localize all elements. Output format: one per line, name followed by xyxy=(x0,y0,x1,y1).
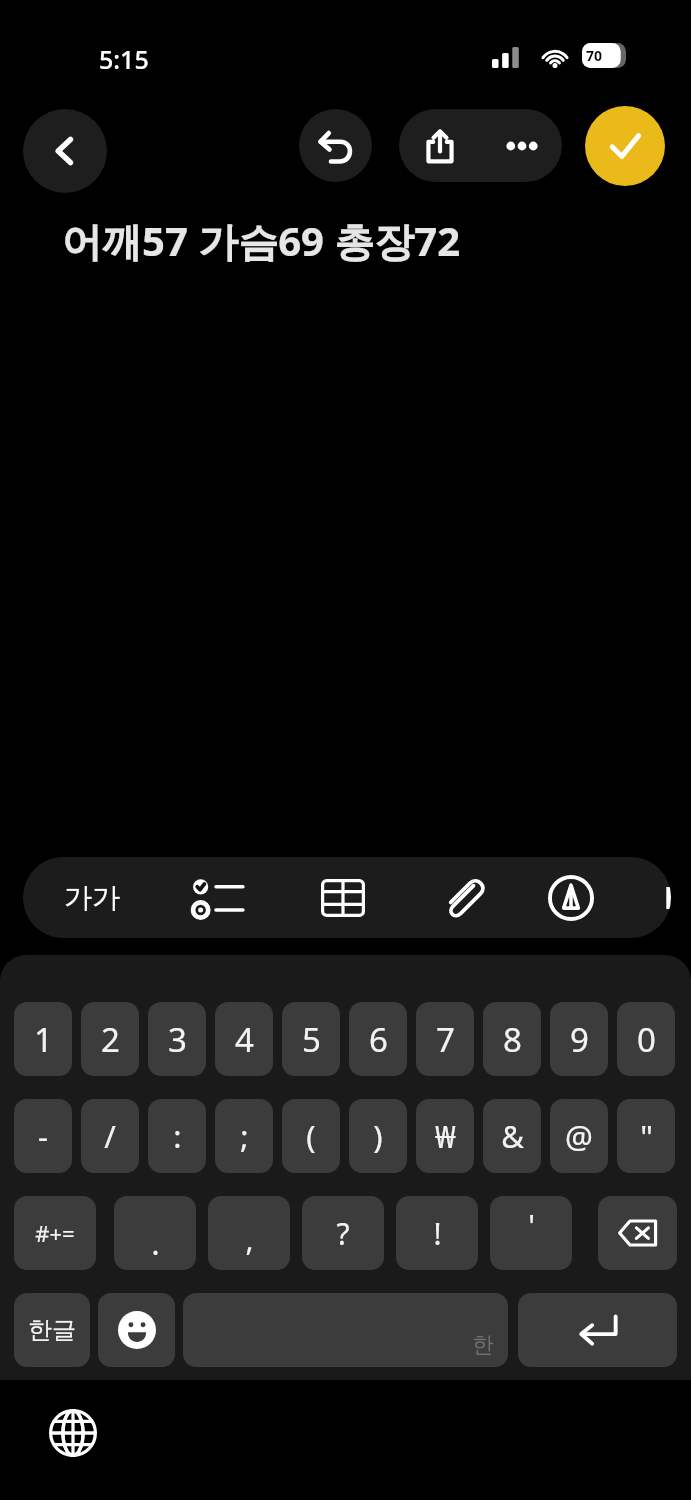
button[interactable]: - xyxy=(14,1099,72,1173)
button[interactable]: ₩ xyxy=(416,1099,474,1173)
button[interactable]: Space xyxy=(183,1293,508,1367)
staticText: 한글 xyxy=(28,1315,76,1345)
button[interactable]: 4 xyxy=(215,1002,273,1076)
button[interactable]: 1 xyxy=(14,1002,72,1076)
staticText: ; xyxy=(240,1115,249,1157)
staticText: ( xyxy=(306,1115,316,1157)
staticText: 2 xyxy=(101,1017,120,1062)
button[interactable]: More options xyxy=(481,109,562,182)
staticText: #+= xyxy=(35,1218,75,1248)
staticText: 70 xyxy=(586,46,603,65)
button[interactable]: 한글 xyxy=(14,1293,90,1367)
button[interactable]: Undo xyxy=(299,109,372,182)
staticText: - xyxy=(38,1115,48,1157)
button[interactable]: 6 xyxy=(349,1002,407,1076)
button[interactable]: Back xyxy=(23,109,107,193)
button[interactable]: 3 xyxy=(148,1002,206,1076)
staticText: 7 xyxy=(436,1017,455,1062)
staticText: 0 xyxy=(637,1017,656,1062)
button[interactable]: ! xyxy=(396,1196,478,1270)
button[interactable]: Done xyxy=(585,106,665,186)
button[interactable]: ' xyxy=(490,1196,572,1270)
button[interactable]: 9 xyxy=(550,1002,608,1076)
staticText: & xyxy=(501,1115,524,1157)
button[interactable]: : xyxy=(148,1099,206,1173)
button[interactable]: 0 xyxy=(617,1002,675,1076)
staticText: @ xyxy=(565,1115,593,1157)
button[interactable]: Draw xyxy=(518,857,623,938)
button[interactable]: Backspace xyxy=(598,1196,677,1270)
button[interactable]: Bold xyxy=(628,857,671,938)
button[interactable]: Change keyboard language xyxy=(38,1398,108,1468)
button[interactable]: 7 xyxy=(416,1002,474,1076)
staticText: : xyxy=(173,1115,182,1157)
staticText: . xyxy=(151,1223,160,1264)
staticText: 어깨57 가슴69 총장72 xyxy=(62,213,461,268)
staticText: 5:15 xyxy=(99,42,149,76)
staticText: 가가 xyxy=(64,880,120,915)
button[interactable]: Enter xyxy=(518,1293,677,1367)
button[interactable]: ? xyxy=(302,1196,384,1270)
button[interactable]: 8 xyxy=(483,1002,541,1076)
staticText: 9 xyxy=(570,1017,589,1062)
staticText: / xyxy=(104,1115,116,1157)
staticText: 1 xyxy=(34,1017,53,1062)
button[interactable]: / xyxy=(81,1099,139,1173)
staticText: 6 xyxy=(369,1017,388,1062)
button[interactable]: #+= xyxy=(14,1196,96,1270)
staticText: , xyxy=(245,1219,254,1260)
staticText: ) xyxy=(373,1115,383,1157)
staticText: " xyxy=(640,1115,653,1157)
button[interactable]: & xyxy=(483,1099,541,1173)
staticText: 4 xyxy=(235,1017,254,1062)
button[interactable]: Emoji xyxy=(98,1293,175,1367)
button[interactable]: Table xyxy=(288,857,398,938)
button[interactable]: ) xyxy=(349,1099,407,1173)
staticText: B xyxy=(664,877,671,918)
button[interactable]: 5 xyxy=(282,1002,340,1076)
button[interactable]: ; xyxy=(215,1099,273,1173)
staticText: 5 xyxy=(302,1017,321,1062)
staticText: ! xyxy=(433,1213,442,1254)
staticText: ₩ xyxy=(435,1115,456,1157)
button[interactable]: , xyxy=(208,1196,290,1270)
button[interactable]: Attach xyxy=(408,857,518,938)
button[interactable]: Share xyxy=(399,109,481,182)
button[interactable]: " xyxy=(617,1099,675,1173)
button[interactable]: 가가 xyxy=(39,857,144,938)
button[interactable]: ( xyxy=(282,1099,340,1173)
button[interactable]: @ xyxy=(550,1099,608,1173)
button[interactable]: 2 xyxy=(81,1002,139,1076)
staticText: 3 xyxy=(168,1017,187,1062)
staticText: 한 xyxy=(472,1331,494,1359)
button[interactable]: Checklist xyxy=(163,857,273,938)
staticText: ' xyxy=(528,1205,535,1246)
button[interactable]: . xyxy=(114,1196,196,1270)
staticText: 8 xyxy=(503,1017,522,1062)
staticText: ? xyxy=(336,1213,350,1254)
